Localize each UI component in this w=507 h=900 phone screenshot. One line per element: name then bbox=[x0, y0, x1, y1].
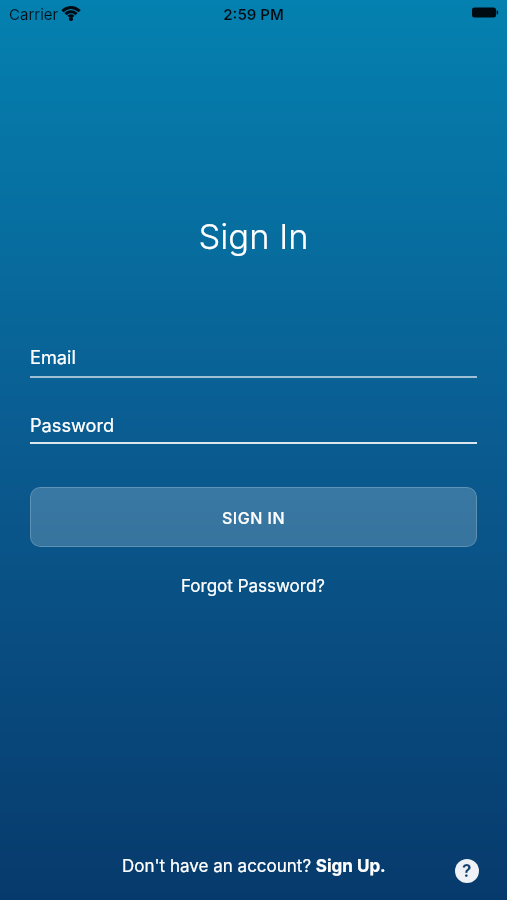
staticText: Password bbox=[30, 414, 115, 436]
staticText: Carrier bbox=[9, 5, 59, 23]
staticText: Email bbox=[30, 346, 76, 368]
button[interactable]: Forgot Password? bbox=[181, 576, 326, 597]
button[interactable]: SIGN IN bbox=[30, 487, 477, 547]
staticText: SIGN IN bbox=[222, 508, 285, 527]
staticText: Sign In bbox=[0, 216, 507, 258]
button[interactable]: ? bbox=[455, 859, 479, 883]
staticText: 2:59 PM bbox=[0, 5, 507, 23]
staticText: ? bbox=[462, 861, 472, 882]
button[interactable]: Don't have an account? Sign Up. bbox=[122, 856, 386, 877]
